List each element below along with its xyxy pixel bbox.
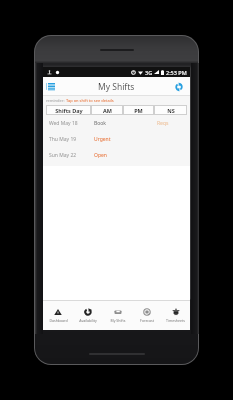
staticText: 2:53 PM: [166, 69, 187, 76]
staticText: My Shifts: [110, 318, 126, 323]
staticText: Forecast: [140, 318, 154, 323]
button[interactable]: Refresh: [172, 80, 185, 93]
button[interactable]: Timesheets: [161, 301, 190, 330]
button[interactable]: Wed May 18: [46, 115, 187, 131]
staticText: NS: [167, 107, 175, 114]
staticText: AM: [103, 107, 112, 114]
staticText: 3G: [145, 69, 153, 76]
staticText: Dashboard: [49, 318, 68, 323]
staticText: Availability: [79, 318, 97, 323]
button[interactable]: My Shifts: [103, 301, 132, 330]
button[interactable]: Availability: [73, 301, 103, 330]
staticText: Reqs: [157, 120, 169, 127]
button[interactable]: Sun May 22: [46, 147, 187, 163]
button[interactable]: Menu: [44, 80, 57, 93]
staticText: My Shifts: [98, 81, 135, 93]
staticText: Sun May 22: [49, 152, 77, 159]
staticText: Urgent: [94, 136, 111, 143]
staticText: Shifts Day: [55, 107, 83, 114]
button[interactable]: Forecast: [132, 301, 161, 330]
button[interactable]: Thu May 19: [46, 131, 187, 147]
staticText: Open: [94, 152, 107, 159]
staticText: PM: [134, 107, 143, 114]
button[interactable]: Dashboard: [43, 301, 73, 330]
staticText: reminder:: [46, 98, 66, 103]
staticText: Timesheets: [166, 318, 185, 323]
staticText: Thu May 19: [49, 136, 77, 143]
staticText: Wed May 18: [49, 120, 78, 127]
staticText: Book: [94, 120, 106, 127]
staticText: Tap on shift to see details: [66, 98, 114, 103]
